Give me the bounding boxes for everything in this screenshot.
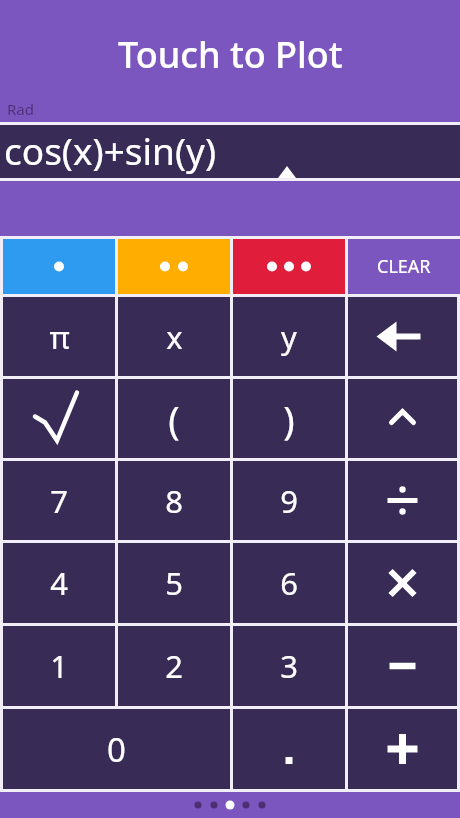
button[interactable]: 6 xyxy=(233,543,345,623)
staticText: 0 xyxy=(107,727,126,772)
button[interactable]: CLEAR xyxy=(348,239,460,294)
staticText: Rad xyxy=(7,99,34,119)
button[interactable]: Square root xyxy=(3,379,115,458)
button[interactable]: Two point plot xyxy=(118,239,230,294)
staticText: 9 xyxy=(280,480,298,522)
staticText: 1 xyxy=(50,645,68,687)
button[interactable]: 1 xyxy=(3,626,115,706)
staticText: x xyxy=(166,316,183,358)
button[interactable]: ) xyxy=(233,379,345,458)
button[interactable]: 3 xyxy=(233,626,345,706)
staticText: y xyxy=(281,316,297,358)
staticText: 8 xyxy=(165,480,183,522)
button[interactable]: One point plot xyxy=(3,239,115,294)
staticText: ( xyxy=(168,393,180,445)
button[interactable]: y xyxy=(233,297,345,376)
button[interactable]: Backspace xyxy=(348,297,457,376)
button[interactable]: ( xyxy=(118,379,230,458)
button[interactable]: 8 xyxy=(118,461,230,540)
staticText: ) xyxy=(283,393,295,445)
button[interactable]: Power xyxy=(348,379,457,458)
staticText: 7 xyxy=(50,480,68,522)
staticText: CLEAR xyxy=(377,254,431,279)
button[interactable]: 2 xyxy=(118,626,230,706)
button[interactable]: Divide xyxy=(348,461,457,540)
staticText: Touch to Plot xyxy=(118,30,343,79)
button[interactable]: 4 xyxy=(3,543,115,623)
staticText: 3 xyxy=(280,645,298,687)
button[interactable]: Minus xyxy=(348,626,457,706)
staticText: 2 xyxy=(165,645,183,687)
staticText: 4 xyxy=(50,562,68,604)
button[interactable]: Decimal point xyxy=(233,709,345,789)
staticText: 6 xyxy=(280,562,298,604)
button[interactable]: x xyxy=(118,297,230,376)
button[interactable]: cos(x)+sin(y) xyxy=(0,125,460,178)
staticText: π xyxy=(49,316,70,358)
button[interactable]: 9 xyxy=(233,461,345,540)
button[interactable]: Plus xyxy=(348,709,457,789)
button[interactable]: π xyxy=(3,297,115,376)
button[interactable]: Multiply xyxy=(348,543,457,623)
button[interactable]: Three point plot xyxy=(233,239,345,294)
button[interactable]: 7 xyxy=(3,461,115,540)
button[interactable]: Rad xyxy=(0,96,460,122)
staticText: cos(x)+sin(y) xyxy=(4,125,217,175)
staticText: 5 xyxy=(165,562,183,604)
button[interactable]: 0 xyxy=(3,709,230,789)
button[interactable]: 5 xyxy=(118,543,230,623)
